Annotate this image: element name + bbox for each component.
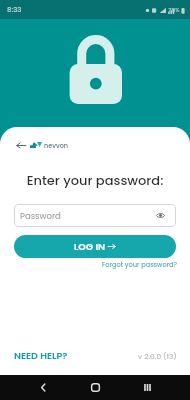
staticText: Enter your password: xyxy=(0,171,190,189)
button[interactable]: Home xyxy=(84,375,107,400)
button[interactable]: Recent apps xyxy=(136,375,159,400)
staticText: v 2.0.0 (13) xyxy=(138,351,177,361)
button[interactable]: Back xyxy=(32,375,55,400)
button[interactable]: NEED HELP? xyxy=(0,349,68,362)
button[interactable]: Forgot your password? xyxy=(102,260,190,269)
button[interactable]: Back xyxy=(14,139,27,152)
staticText: LOG IN xyxy=(74,240,105,253)
staticText: 8:33 xyxy=(7,5,22,15)
staticText: 78% xyxy=(168,6,180,14)
other: Show password xyxy=(156,212,165,219)
staticText: Password xyxy=(20,210,61,222)
staticText: nevvon xyxy=(44,141,69,150)
button[interactable]: LOG IN xyxy=(14,235,176,258)
button[interactable]: Password xyxy=(14,204,176,227)
